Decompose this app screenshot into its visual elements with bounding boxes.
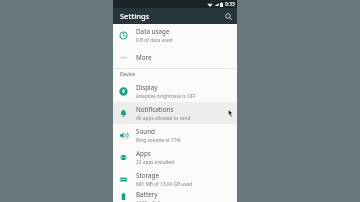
button[interactable]: Sound	[113, 124, 237, 146]
staticText: Display	[136, 83, 158, 92]
staticText: More	[136, 53, 152, 62]
button[interactable]: Battery	[113, 190, 237, 202]
staticText: 100% - Full	[136, 200, 161, 202]
staticText: Device	[120, 71, 136, 78]
staticText: All apps allowed to send	[136, 115, 191, 122]
staticText: Storage	[136, 171, 159, 180]
button[interactable]: Search	[222, 10, 234, 22]
staticText: Adaptive brightness is OFF	[136, 93, 196, 100]
staticText: Ring volume at 71%	[136, 137, 181, 144]
staticText: Settings	[120, 11, 150, 21]
staticText: 0 B of data used	[136, 37, 173, 44]
button[interactable]: More	[113, 46, 237, 68]
staticText: 22 apps installed	[136, 159, 174, 166]
button[interactable]: Display	[113, 80, 237, 102]
staticText: Data usage	[136, 27, 170, 36]
staticText: Sound	[136, 127, 155, 136]
button[interactable]: Storage	[113, 168, 237, 190]
button[interactable]: Apps	[113, 146, 237, 168]
staticText: Notifications	[136, 105, 174, 114]
button[interactable]: Data usage	[113, 24, 237, 46]
button[interactable]: Notifications	[113, 102, 237, 124]
staticText: Battery	[136, 190, 158, 199]
staticText: Apps	[136, 149, 151, 158]
staticText: 9:33	[225, 1, 235, 8]
staticText: 681 MB of 13.04 GB used	[136, 181, 193, 188]
